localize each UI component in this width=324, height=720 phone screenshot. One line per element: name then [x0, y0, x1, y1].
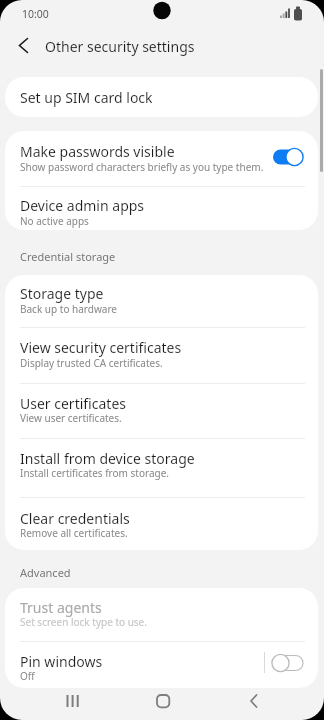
button[interactable]	[5, 330, 318, 385]
staticText: View user certificates.	[20, 411, 122, 425]
staticText: Back up to hardware	[20, 302, 117, 316]
button[interactable]	[5, 440, 318, 495]
staticText: Storage type	[20, 284, 104, 303]
staticText: Other security settings	[45, 37, 195, 56]
button[interactable]	[5, 385, 318, 440]
button[interactable]	[5, 77, 318, 117]
staticText: Make passwords visible	[20, 142, 175, 161]
button[interactable]	[5, 131, 318, 186]
staticText: Install certificates from storage.	[20, 466, 169, 480]
staticText: Advanced	[20, 565, 71, 580]
staticText: Off	[20, 669, 35, 683]
staticText: Trust agents	[20, 598, 102, 617]
staticText: Credential storage	[20, 249, 116, 264]
button[interactable]	[8, 30, 40, 62]
staticText: Remove all certificates.	[20, 526, 128, 540]
button[interactable]	[233, 687, 275, 715]
button[interactable]	[5, 641, 318, 688]
staticText: Install from device storage	[20, 449, 195, 468]
staticText: No active apps	[20, 214, 89, 228]
staticText: Display trusted CA certificates.	[20, 356, 163, 370]
button[interactable]	[52, 687, 94, 715]
staticText: User certificates	[20, 394, 126, 413]
staticText: Pin windows	[20, 652, 103, 671]
staticText: Set up SIM card lock	[20, 88, 153, 107]
staticText: Device admin apps	[20, 196, 145, 215]
button[interactable]	[5, 186, 318, 230]
button[interactable]	[269, 144, 309, 170]
button[interactable]	[269, 650, 309, 676]
button[interactable]	[5, 275, 318, 330]
staticText: Set screen lock type to use.	[20, 615, 147, 629]
staticText: Clear credentials	[20, 509, 130, 528]
button[interactable]	[5, 495, 318, 550]
button[interactable]	[142, 687, 184, 715]
staticText: Show password characters briefly as you …	[20, 160, 264, 174]
staticText: 10:00	[22, 7, 49, 21]
staticText: View security certificates	[20, 338, 182, 357]
button[interactable]	[5, 588, 318, 641]
